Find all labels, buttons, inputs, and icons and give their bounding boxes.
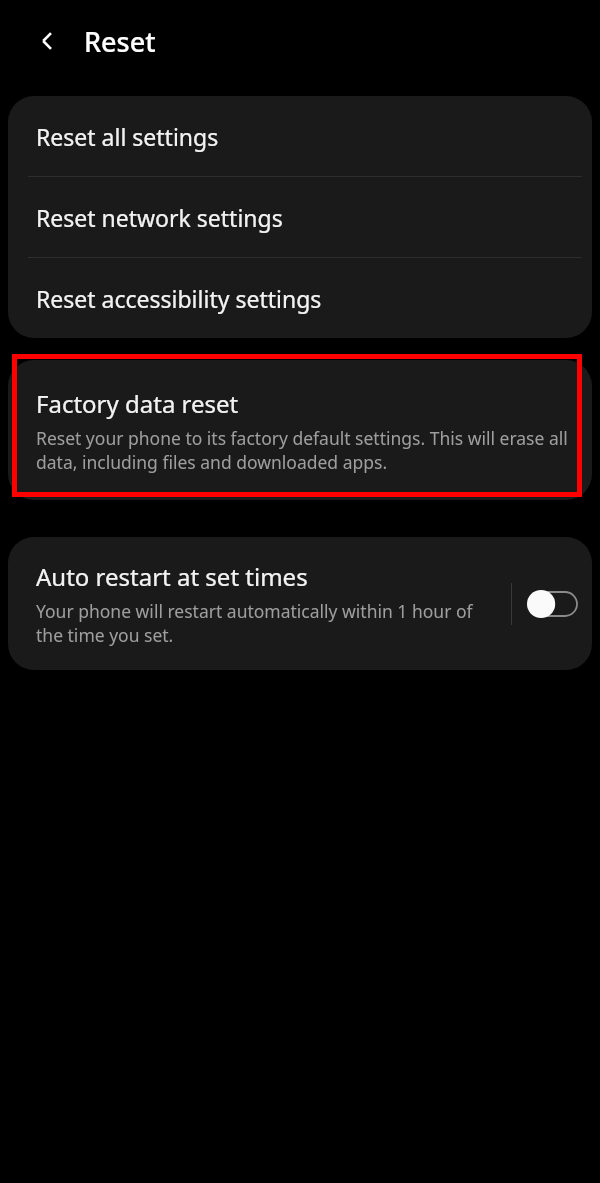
staticText: Reset all settings bbox=[36, 121, 219, 152]
button[interactable]: Auto restart toggle, off bbox=[526, 589, 578, 619]
button[interactable]: Auto restart at set times bbox=[8, 537, 592, 670]
staticText: Auto restart at set times bbox=[36, 560, 308, 593]
button[interactable]: Reset network settings bbox=[8, 177, 592, 257]
staticText: Factory data reset bbox=[36, 387, 239, 420]
button[interactable]: Reset accessibility settings bbox=[8, 258, 592, 338]
staticText: Reset your phone to its factory default … bbox=[36, 426, 572, 474]
button[interactable]: Back bbox=[26, 19, 70, 63]
button[interactable]: Reset all settings bbox=[8, 96, 592, 176]
staticText: Reset accessibility settings bbox=[36, 283, 322, 314]
staticText: Your phone will restart automatically wi… bbox=[36, 599, 503, 647]
staticText: Reset bbox=[84, 23, 156, 60]
staticText: Reset network settings bbox=[36, 202, 283, 233]
other: Auto restart toggle, off bbox=[526, 589, 578, 619]
button[interactable]: Factory data reset bbox=[8, 360, 592, 500]
